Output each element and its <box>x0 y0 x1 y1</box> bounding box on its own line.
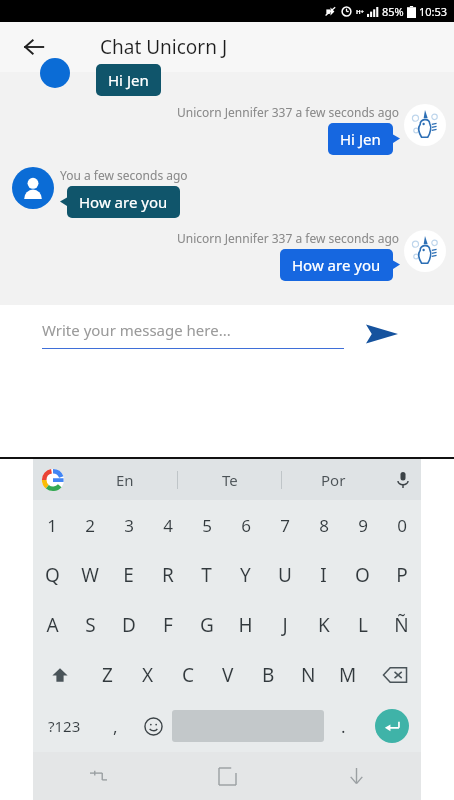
button[interactable]: Recent apps <box>33 752 163 800</box>
staticText: S <box>85 612 96 638</box>
staticText: X <box>142 662 154 688</box>
button[interactable]: Enter <box>362 700 421 752</box>
staticText: H <box>238 612 253 638</box>
button[interactable]: How are you <box>292 255 381 275</box>
button[interactable]: Hide keyboard <box>292 752 421 800</box>
button[interactable]: Back <box>14 27 54 67</box>
button[interactable]: P <box>382 550 421 600</box>
staticText: Chat Unicorn J <box>100 34 228 60</box>
button[interactable]: How are you <box>79 192 168 212</box>
button[interactable]: Home <box>163 752 292 800</box>
button[interactable]: 6 <box>226 500 265 550</box>
staticText: Unicorn Jennifer 337 a few seconds ago <box>177 230 400 246</box>
button[interactable]: V <box>208 650 248 700</box>
button[interactable]: G <box>187 600 226 650</box>
staticText: R <box>162 562 174 588</box>
staticText: Por <box>321 470 346 490</box>
staticText: W <box>81 562 99 588</box>
staticText: H+ <box>356 8 365 16</box>
staticText: 1 <box>47 514 57 537</box>
staticText: 85% <box>382 4 404 19</box>
staticText: N <box>301 662 316 688</box>
staticText: 3 <box>124 514 134 537</box>
button[interactable]: R <box>148 550 187 600</box>
button[interactable]: M <box>328 650 368 700</box>
button[interactable]: Hi Jen <box>340 129 381 149</box>
button[interactable]: J <box>265 600 304 650</box>
button[interactable]: 2 <box>71 500 109 550</box>
button[interactable]: Z <box>87 650 128 700</box>
staticText: 2 <box>85 514 95 537</box>
staticText: Y <box>240 562 251 588</box>
button[interactable]: W <box>71 550 109 600</box>
button[interactable]: En <box>73 459 177 500</box>
button[interactable]: T <box>187 550 226 600</box>
staticText: 0 <box>397 514 407 537</box>
button[interactable]: D <box>109 600 148 650</box>
button[interactable]: , <box>96 700 134 752</box>
button[interactable]: Por <box>282 459 385 500</box>
button[interactable]: L <box>343 600 382 650</box>
button[interactable]: Hi Jen <box>108 70 149 90</box>
staticText: U <box>278 562 292 588</box>
button[interactable]: Te <box>178 459 281 500</box>
staticText: Write your message here... <box>42 320 231 340</box>
staticText: D <box>122 612 136 638</box>
staticText: 10:53 <box>419 4 448 19</box>
staticText: G <box>200 612 214 638</box>
button[interactable]: I <box>304 550 343 600</box>
button[interactable]: N <box>288 650 328 700</box>
staticText: M <box>339 662 357 688</box>
staticText: T <box>201 562 212 588</box>
button[interactable]: A <box>33 600 71 650</box>
button[interactable]: Ñ <box>382 600 421 650</box>
button[interactable]: ?123 <box>33 700 96 752</box>
button[interactable]: Voice input <box>385 462 421 498</box>
staticText: L <box>358 612 368 638</box>
button[interactable]: Google <box>33 460 73 500</box>
button[interactable]: Y <box>226 550 265 600</box>
button[interactable]: 8 <box>304 500 343 550</box>
button[interactable]: C <box>168 650 208 700</box>
button[interactable]: B <box>248 650 288 700</box>
button[interactable]: . <box>324 700 362 752</box>
staticText: F <box>163 612 173 638</box>
staticText: C <box>182 662 195 688</box>
button[interactable]: U <box>265 550 304 600</box>
staticText: J <box>282 612 288 638</box>
button[interactable]: Shift <box>33 650 87 700</box>
button[interactable]: 7 <box>265 500 304 550</box>
button[interactable]: K <box>304 600 343 650</box>
button[interactable]: 9 <box>343 500 382 550</box>
staticText: P <box>396 562 408 588</box>
button[interactable]: S <box>71 600 109 650</box>
button[interactable]: 3 <box>109 500 148 550</box>
button[interactable]: Write your message here... <box>42 320 342 340</box>
button[interactable]: 5 <box>187 500 226 550</box>
button[interactable]: Q <box>33 550 71 600</box>
staticText: V <box>222 662 234 688</box>
button[interactable]: Backspace <box>368 650 421 700</box>
staticText: 8 <box>319 514 329 537</box>
staticText: Q <box>45 562 60 588</box>
staticText: En <box>116 470 134 490</box>
staticText: Hi Jen <box>108 70 149 90</box>
button[interactable]: Emoji <box>134 700 172 752</box>
staticText: Te <box>222 470 238 490</box>
button[interactable]: E <box>109 550 148 600</box>
staticText: Hi Jen <box>340 129 381 149</box>
staticText: 9 <box>358 514 368 537</box>
staticText: I <box>320 562 327 588</box>
button[interactable]: 1 <box>33 500 71 550</box>
staticText: Unicorn Jennifer 337 a few seconds ago <box>177 104 400 120</box>
button[interactable]: F <box>148 600 187 650</box>
button[interactable]: Send <box>358 310 406 358</box>
button[interactable]: 0 <box>382 500 421 550</box>
button[interactable]: X <box>128 650 168 700</box>
button[interactable]: 4 <box>148 500 187 550</box>
staticText: K <box>318 612 330 638</box>
button[interactable]: H <box>226 600 265 650</box>
staticText: Z <box>102 662 113 688</box>
button[interactable]: O <box>343 550 382 600</box>
